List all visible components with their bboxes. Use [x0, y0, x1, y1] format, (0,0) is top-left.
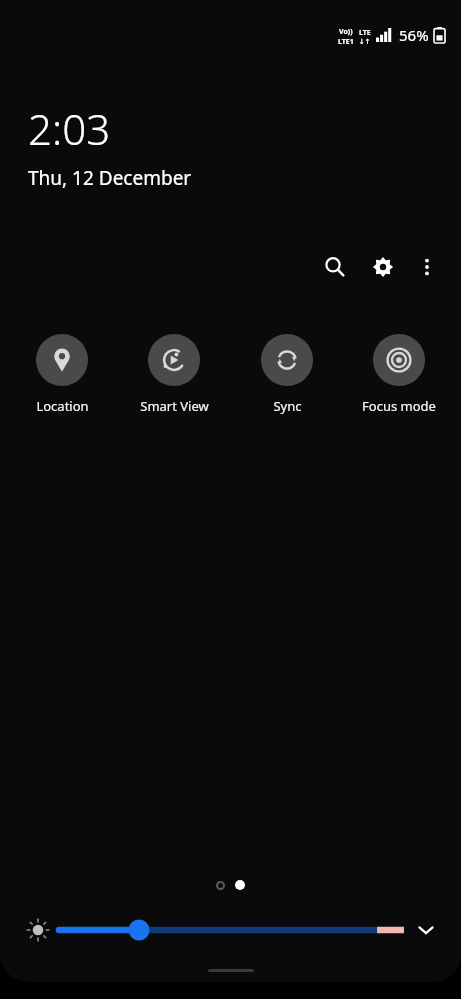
staticText: Sync [273, 397, 302, 415]
staticText: ↓↑ [359, 38, 371, 46]
button[interactable]: Smart View [124, 332, 224, 417]
button[interactable]: Location [12, 332, 112, 417]
button[interactable]: Settings [361, 245, 405, 289]
staticText: Location [36, 397, 89, 415]
staticText: Smart View [140, 397, 209, 415]
staticText: LTE1 [338, 37, 354, 47]
staticText: Focus mode [362, 397, 436, 415]
staticText: 2:03 [28, 100, 111, 157]
staticText: Vo)) [339, 27, 353, 37]
staticText: LTE [359, 28, 371, 38]
button[interactable]: Focus mode [349, 332, 449, 417]
button[interactable]: Auto brightness [18, 910, 58, 950]
button[interactable]: More options [407, 247, 447, 287]
staticText: 56% [399, 25, 429, 45]
button[interactable]: Search [313, 245, 357, 289]
button[interactable]: Expand [405, 909, 447, 951]
button[interactable]: Sync [237, 332, 337, 417]
button[interactable]: Brightness [58, 913, 405, 947]
staticText: Thu, 12 December [28, 165, 192, 191]
